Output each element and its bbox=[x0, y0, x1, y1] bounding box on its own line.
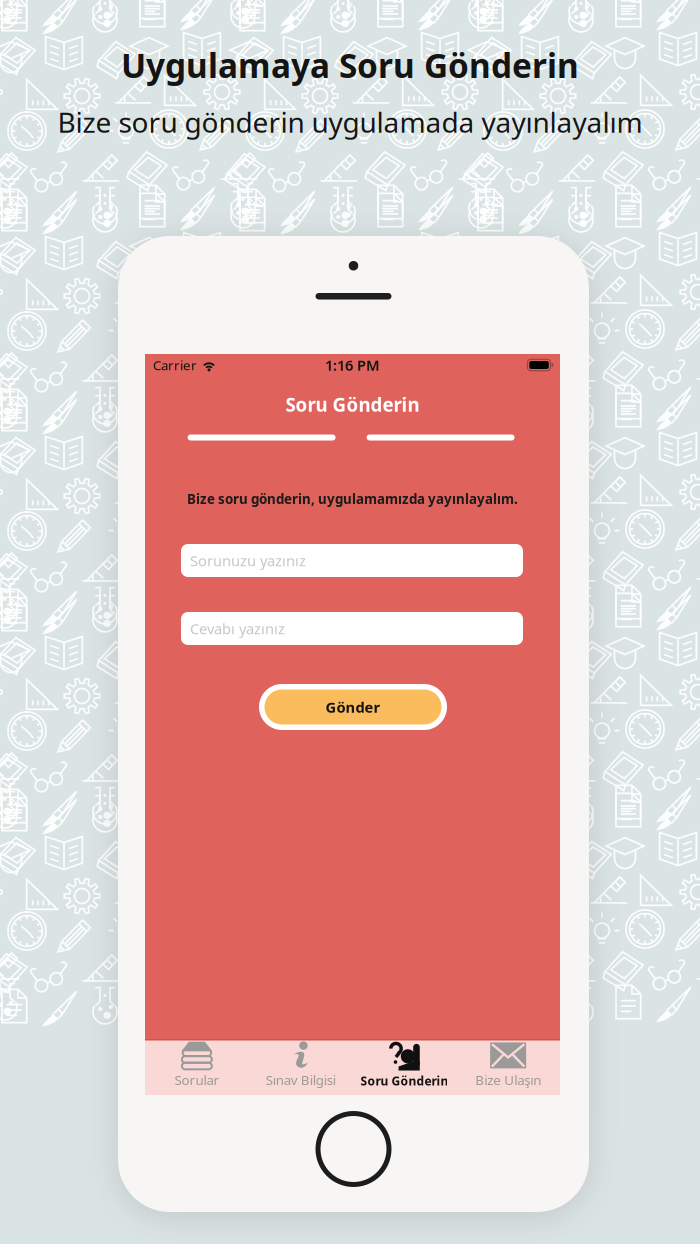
staticText: Bize soru gönderin uygulamada yayınlayal… bbox=[57, 103, 642, 140]
button[interactable]: Soru Gönderin bbox=[352, 1040, 456, 1096]
button[interactable]: Sorunuzu yazınız bbox=[181, 544, 523, 577]
staticText: Gönder bbox=[325, 697, 380, 717]
staticText: Carrier bbox=[153, 356, 197, 374]
staticText: Sınav Bilgisi bbox=[266, 1071, 336, 1089]
button[interactable]: Gönder bbox=[259, 684, 447, 730]
staticText: Sorular bbox=[174, 1071, 219, 1089]
button[interactable]: Sorular bbox=[145, 1040, 249, 1096]
staticText: Cevabı yazınız bbox=[190, 619, 285, 638]
button[interactable]: Sınav Bilgisi bbox=[249, 1040, 353, 1096]
button[interactable]: Bize Ulaşın bbox=[456, 1040, 560, 1096]
staticText: Soru Gönderin bbox=[360, 1073, 448, 1089]
staticText: Uygulamaya Soru Gönderin bbox=[121, 43, 579, 87]
staticText: Soru Gönderin bbox=[285, 392, 419, 417]
staticText: Sorunuzu yazınız bbox=[190, 551, 306, 570]
button[interactable]: Cevabı yazınız bbox=[181, 612, 523, 645]
staticText: 1:16 PM bbox=[325, 355, 380, 375]
staticText: Bize Ulaşın bbox=[475, 1071, 541, 1089]
staticText: Bize soru gönderin, uygulamamızda yayınl… bbox=[187, 490, 518, 508]
